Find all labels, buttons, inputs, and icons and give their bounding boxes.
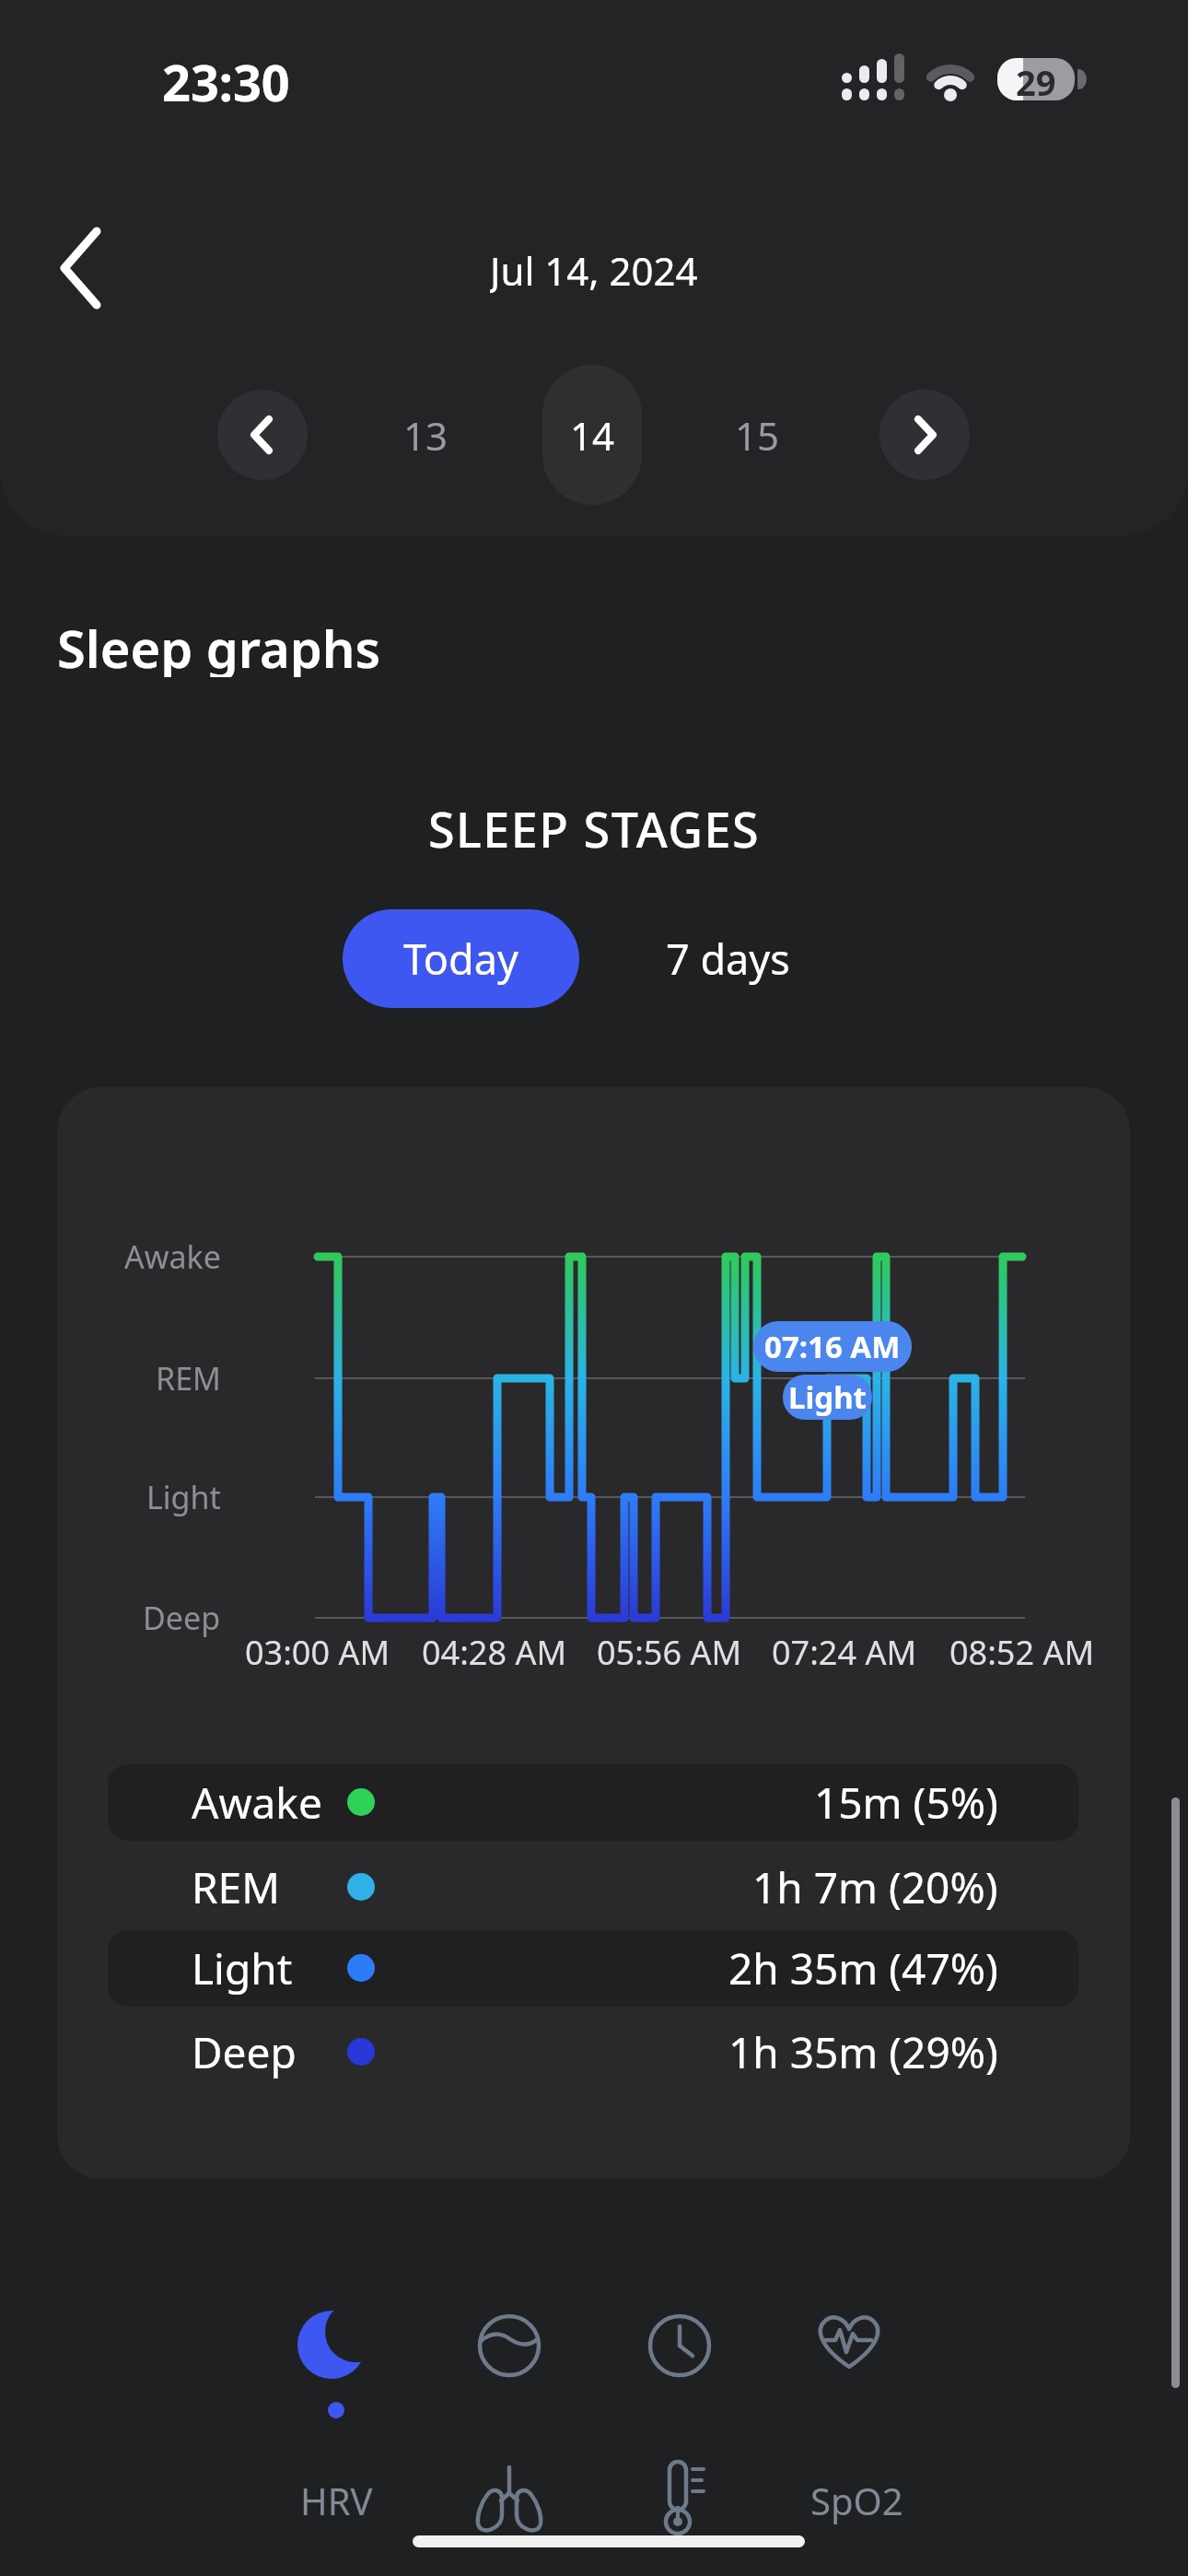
staticText: Today [403, 931, 518, 987]
button[interactable] [454, 2445, 565, 2556]
button[interactable]: 7 days [0, 0, 184, 74]
staticText: 07:16 AM [764, 1326, 901, 1367]
staticText: Deep [192, 2023, 297, 2081]
staticText: 1h 35m (29%) [728, 2023, 998, 2081]
staticText: REM [156, 1357, 221, 1399]
staticText: HRV [300, 2476, 373, 2525]
staticText: 14 [570, 409, 615, 462]
staticText: Awake [192, 1774, 322, 1832]
button[interactable] [624, 2289, 735, 2400]
staticText: 1h 7m (20%) [752, 1858, 998, 1916]
button[interactable]: 14 [542, 365, 642, 505]
button[interactable] [794, 2289, 904, 2400]
staticText: SpO2 [810, 2476, 903, 2525]
button[interactable] [37, 221, 129, 313]
staticText: 2h 35m (47%) [728, 1939, 998, 1997]
staticText: 08:52 AM [949, 1630, 1095, 1675]
staticText: Sleep graphs [57, 613, 381, 677]
staticText: 07:24 AM [772, 1630, 917, 1675]
staticText: 23:30 [162, 48, 290, 107]
staticText: 04:28 AM [422, 1630, 567, 1675]
staticText: Awake [124, 1235, 221, 1278]
button[interactable]: Today [343, 909, 579, 1008]
staticText: Jul 14, 2024 [490, 244, 698, 296]
button[interactable] [281, 2289, 391, 2400]
staticText: Light [146, 1476, 221, 1518]
staticText: Light [192, 1939, 293, 1997]
button[interactable] [624, 2445, 735, 2556]
button[interactable] [454, 2289, 565, 2400]
button[interactable] [217, 390, 308, 480]
staticText: 15m (5%) [814, 1774, 998, 1832]
staticText: 15 [735, 409, 780, 462]
staticText: 29 [1016, 58, 1056, 100]
staticText: 03:00 AM [245, 1630, 390, 1675]
staticText: Light [788, 1376, 867, 1418]
staticText: Deep [143, 1597, 221, 1639]
button[interactable] [879, 390, 970, 480]
staticText: REM [192, 1858, 280, 1916]
staticText: SLEEP STAGES [428, 796, 761, 853]
staticText: 05:56 AM [597, 1630, 742, 1675]
staticText: 13 [403, 409, 448, 462]
staticText: 7 days [666, 931, 790, 987]
